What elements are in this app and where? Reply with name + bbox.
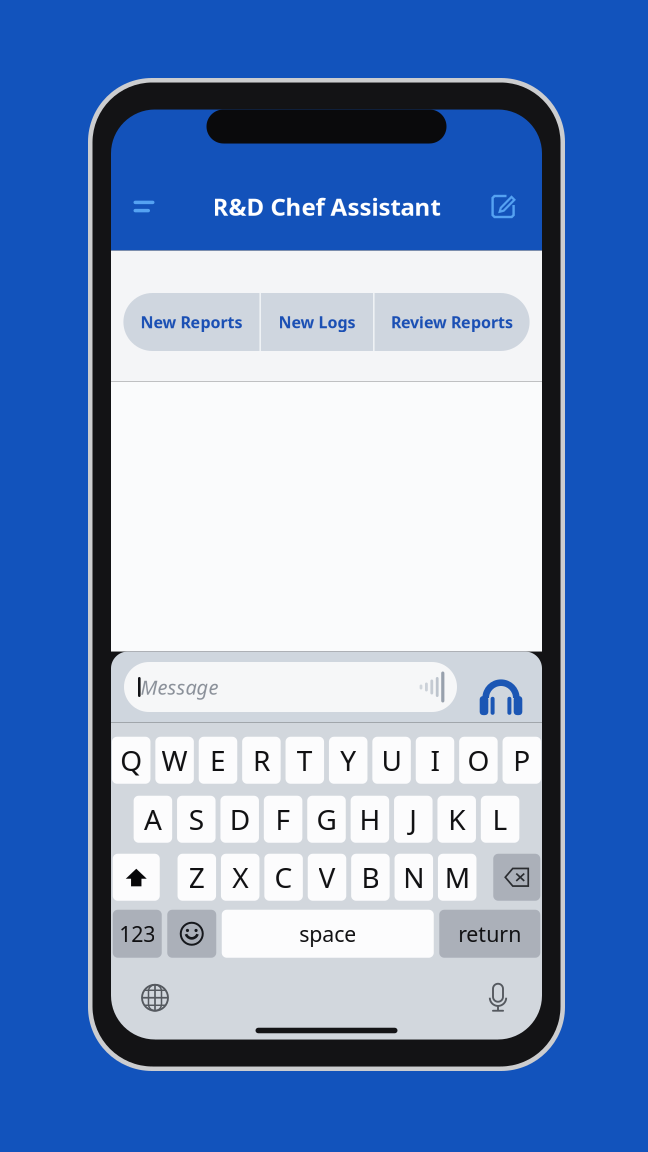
staticText: S bbox=[189, 801, 204, 838]
staticText: T bbox=[297, 742, 313, 779]
button[interactable]: W bbox=[155, 737, 194, 784]
button[interactable]: Delete bbox=[493, 854, 540, 901]
staticText: Z bbox=[189, 859, 205, 896]
button[interactable]: D bbox=[220, 796, 259, 843]
staticText: Message bbox=[141, 674, 219, 700]
staticText: P bbox=[513, 742, 530, 779]
button[interactable]: K bbox=[437, 796, 476, 843]
button[interactable]: O bbox=[459, 737, 498, 784]
button[interactable]: T bbox=[285, 737, 324, 784]
button[interactable]: 123 bbox=[113, 910, 162, 958]
staticText: M bbox=[445, 859, 470, 896]
button[interactable]: Shift bbox=[113, 854, 160, 901]
staticText: O bbox=[467, 742, 489, 779]
staticText: X bbox=[232, 859, 248, 896]
staticText: W bbox=[162, 742, 188, 779]
staticText: H bbox=[359, 801, 380, 838]
staticText: V bbox=[318, 859, 335, 896]
button[interactable]: Menu bbox=[122, 184, 166, 228]
button[interactable]: F bbox=[264, 796, 302, 843]
staticText: New Logs bbox=[278, 311, 355, 333]
staticText: C bbox=[275, 859, 293, 896]
staticText: New Reports bbox=[140, 311, 242, 333]
button[interactable]: return bbox=[439, 910, 540, 958]
staticText: F bbox=[276, 801, 291, 838]
staticText: R&D Chef Assistant bbox=[212, 191, 440, 222]
staticText: 123 bbox=[119, 920, 155, 948]
button[interactable]: Voice mode bbox=[477, 662, 525, 712]
button[interactable]: Compose bbox=[482, 184, 526, 228]
button[interactable]: I bbox=[416, 737, 454, 784]
button[interactable]: A bbox=[134, 796, 172, 843]
button[interactable]: S bbox=[177, 796, 216, 843]
button[interactable]: Z bbox=[178, 854, 216, 901]
button[interactable]: J bbox=[394, 796, 432, 843]
staticText: U bbox=[382, 742, 402, 779]
staticText: J bbox=[409, 801, 417, 838]
button[interactable]: space bbox=[222, 910, 434, 958]
button[interactable]: G bbox=[307, 796, 346, 843]
staticText: D bbox=[230, 801, 250, 838]
button[interactable]: B bbox=[351, 854, 390, 901]
staticText: B bbox=[361, 859, 379, 896]
staticText: L bbox=[493, 801, 508, 838]
staticText: space bbox=[299, 920, 356, 948]
button[interactable]: U bbox=[372, 737, 411, 784]
button[interactable]: R bbox=[242, 737, 281, 784]
button[interactable]: V bbox=[308, 854, 346, 901]
button[interactable]: P bbox=[502, 737, 541, 784]
staticText: return bbox=[458, 920, 521, 948]
button[interactable]: Y bbox=[329, 737, 367, 784]
staticText: I bbox=[430, 742, 439, 779]
button[interactable]: Emoji bbox=[167, 910, 216, 958]
staticText: R bbox=[253, 742, 270, 779]
staticText: Review Reports bbox=[391, 311, 513, 333]
button[interactable]: L bbox=[481, 796, 519, 843]
button[interactable]: E bbox=[199, 737, 237, 784]
staticText: G bbox=[316, 801, 336, 838]
button[interactable]: N bbox=[395, 854, 433, 901]
button[interactable]: M bbox=[438, 854, 476, 901]
button[interactable]: Review Reports bbox=[375, 293, 530, 351]
staticText: N bbox=[403, 859, 424, 896]
staticText: A bbox=[144, 801, 162, 838]
button[interactable]: New Reports bbox=[123, 293, 259, 351]
button[interactable]: X bbox=[221, 854, 259, 901]
staticText: E bbox=[210, 742, 226, 779]
staticText: Y bbox=[340, 742, 356, 779]
staticText: K bbox=[448, 801, 465, 838]
button[interactable]: New Logs bbox=[261, 293, 373, 351]
button[interactable]: H bbox=[351, 796, 389, 843]
button[interactable]: Next keyboard bbox=[133, 976, 177, 1020]
staticText: Q bbox=[120, 742, 142, 779]
button[interactable]: Dictation bbox=[476, 976, 520, 1020]
button[interactable]: Q bbox=[112, 737, 150, 784]
button[interactable]: C bbox=[264, 854, 303, 901]
